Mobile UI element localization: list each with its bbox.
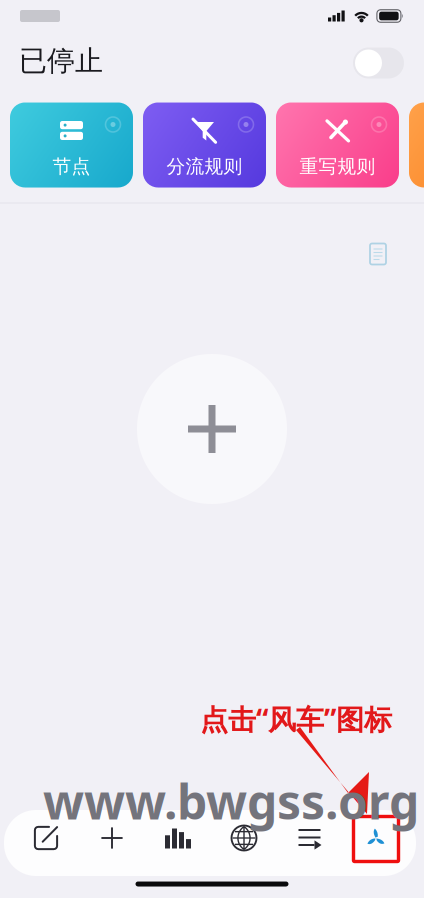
button[interactable]: Logs [360,236,396,272]
button[interactable]: Browse [211,805,277,871]
button[interactable]: Modules [343,805,409,871]
staticText: 已停止 [19,44,103,78]
button[interactable]: 分流规则 [143,102,266,187]
staticText: 节点 [52,155,90,178]
button[interactable]: Compose [13,805,79,871]
staticText: www.bwgss.org [43,768,419,834]
button[interactable]: 重写规则 [276,102,399,187]
staticText: 重写规则 [299,155,375,178]
staticText: 点击“风车”图标 [200,700,392,738]
button[interactable]: Requests [277,805,343,871]
button[interactable]: Proxy toggle [353,47,404,78]
button[interactable]: Statistics [145,805,211,871]
staticText: 分流规则 [166,155,242,178]
button[interactable]: 节点 [10,102,133,187]
button[interactable]: New profile [79,805,145,871]
button[interactable]: MitM [409,102,424,187]
button[interactable]: Add profile [132,349,292,509]
